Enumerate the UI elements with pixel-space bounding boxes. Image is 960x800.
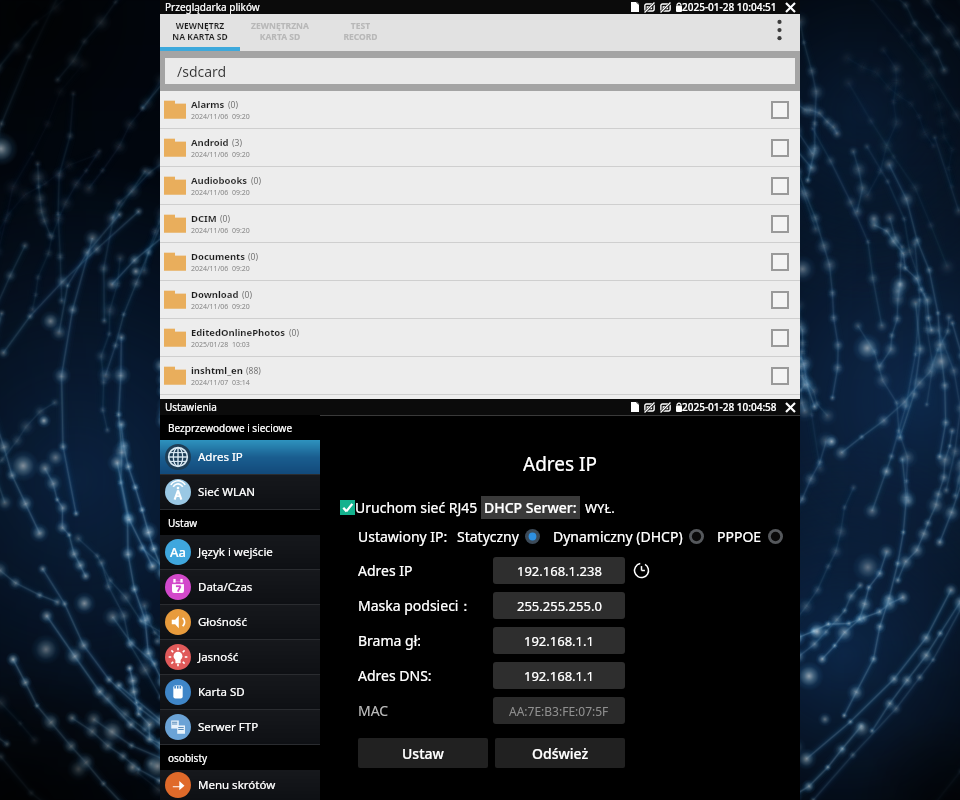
staticText: Brama gł: (358, 631, 422, 650)
button[interactable]: Enable RJ45 (340, 500, 355, 515)
staticText: ZEWNĘTRZNA KARTA SD (251, 20, 309, 42)
button[interactable]: Download (160, 281, 800, 318)
button[interactable]: 192.168.1.238 (493, 557, 625, 584)
staticText: Data/Czas (198, 579, 253, 595)
button[interactable]: Data/Czas (160, 570, 320, 604)
staticText: Karta SD (198, 684, 245, 700)
staticText: DCIM (191, 212, 217, 225)
staticText: Statyczny (457, 527, 519, 546)
staticText: Download (191, 288, 239, 301)
button[interactable]: Close (784, 401, 796, 413)
staticText: Język i wejście (198, 544, 273, 560)
button[interactable]: Select Download (772, 292, 788, 308)
staticText: (88) (246, 365, 261, 377)
button[interactable]: TEST RECORD (320, 14, 400, 51)
staticText: 2024/11/06 09:20 (191, 150, 250, 160)
button[interactable]: Ustaw (358, 738, 488, 768)
staticText: 2025/01/28 10:03 (191, 340, 250, 350)
button[interactable]: Select Documents (772, 254, 788, 270)
staticText: inshtml_en (191, 364, 243, 377)
button[interactable]: 255.255.255.0 (493, 592, 625, 619)
staticText: Odśwież (532, 744, 589, 763)
button[interactable]: Aa (160, 535, 320, 569)
staticText: MAC (358, 701, 389, 720)
staticText: (0) (251, 175, 261, 187)
staticText: Jasność (198, 649, 239, 665)
button[interactable]: WEWNĘTRZ NA KARTA SD (160, 14, 240, 51)
staticText: (3) (232, 137, 242, 149)
staticText: (0) (220, 213, 230, 225)
button[interactable]: Select Android (772, 140, 788, 156)
staticText: Dynamiczny (DHCP) (553, 527, 683, 546)
staticText: WYŁ. (585, 499, 615, 517)
staticText: AA:7E:B3:FE:07:5F (509, 703, 609, 719)
staticText: (0) (289, 327, 299, 339)
staticText: (0) (248, 251, 258, 263)
staticText: Ustaw (168, 516, 198, 530)
staticText: Aa (170, 543, 186, 561)
staticText: 2024/11/06 09:20 (191, 264, 250, 274)
staticText: 255.255.255.0 (517, 597, 602, 615)
button[interactable]: Select Audiobooks (772, 178, 788, 194)
button[interactable]: Karta SD (160, 675, 320, 709)
button[interactable]: Serwer FTP (160, 710, 320, 744)
staticText: Głośność (198, 614, 247, 630)
staticText: /sdcard (177, 62, 227, 81)
button[interactable]: Głośność (160, 605, 320, 639)
staticText: 192.168.1.238 (517, 562, 602, 580)
button[interactable]: Select DCIM (772, 216, 788, 232)
staticText: Adres IP (358, 561, 413, 580)
button[interactable]: Not selected (768, 529, 783, 544)
staticText: Adres IP (320, 451, 800, 477)
staticText: WEWNĘTRZ NA KARTA SD (172, 20, 228, 42)
staticText: 2024/11/06 09:20 (191, 302, 250, 312)
button[interactable]: DCIM (160, 205, 800, 242)
staticText: 192.168.1.1 (524, 632, 594, 650)
staticText: 2024/11/07 03:14 (191, 378, 250, 388)
button[interactable]: Selected (525, 529, 540, 544)
button[interactable]: Odśwież (495, 738, 625, 768)
button[interactable]: Menu skrótów (160, 770, 320, 800)
button[interactable]: Adres IP (160, 440, 320, 474)
staticText: Uruchom sieć RJ45 (355, 498, 478, 517)
button[interactable]: 192.168.1.1 (493, 662, 625, 689)
button[interactable]: Not selected (689, 529, 704, 544)
staticText: 2025-01-28 10:04:51 (682, 0, 777, 14)
staticText: 2024/11/06 09:20 (191, 188, 250, 198)
button[interactable]: Jasność (160, 640, 320, 674)
button[interactable]: Select inshtml_en (772, 368, 788, 384)
staticText: 2024/11/06 09:20 (191, 226, 250, 236)
staticText: Alarms (191, 98, 225, 111)
button[interactable]: History (633, 562, 650, 579)
staticText: Android (191, 136, 229, 149)
staticText: (0) (228, 99, 238, 111)
button[interactable]: Alarms (160, 91, 800, 128)
staticText: PPPOE (717, 527, 762, 546)
staticText: Menu skrótów (198, 777, 276, 793)
staticText: Przeglądarka plików (165, 0, 260, 14)
button[interactable]: Audiobooks (160, 167, 800, 204)
staticText: Bezprzewodowe i sieciowe (168, 421, 293, 435)
staticText: Adres IP (198, 449, 243, 465)
staticText: Adres DNS: (358, 666, 432, 685)
staticText: Serwer FTP (198, 719, 259, 735)
staticText: EditedOnlinePhotos (191, 326, 286, 339)
button[interactable]: inshtml_en (160, 357, 800, 394)
staticText: Ustawiony IP: (358, 527, 448, 546)
staticText: 2025-01-28 10:04:58 (682, 400, 777, 414)
button[interactable]: Close (784, 1, 796, 13)
button[interactable]: EditedOnlinePhotos (160, 319, 800, 356)
button[interactable]: Select Alarms (772, 102, 788, 118)
button[interactable]: AA:7E:B3:FE:07:5F (493, 697, 625, 724)
button[interactable]: More options (758, 14, 800, 51)
button[interactable]: Android (160, 129, 800, 166)
staticText: Documents (191, 250, 245, 263)
button[interactable]: Select EditedOnlinePhotos (772, 330, 788, 346)
button[interactable]: ZEWNĘTRZNA KARTA SD (240, 14, 320, 51)
button[interactable]: /sdcard (165, 58, 795, 84)
staticText: Ustaw (402, 744, 444, 763)
button[interactable]: Documents (160, 243, 800, 280)
button[interactable]: Sieć WLAN (160, 475, 320, 509)
staticText: Ustawienia (165, 400, 217, 414)
button[interactable]: 192.168.1.1 (493, 627, 625, 654)
